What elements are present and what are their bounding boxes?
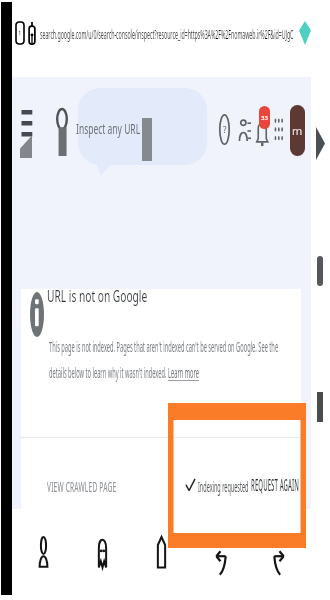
staticText: ? — [223, 124, 227, 135]
button[interactable]: Learn more — [168, 364, 199, 372]
staticText: search.google.com/u/0/search-console/ins… — [40, 25, 294, 42]
staticText: 1 — [18, 29, 22, 37]
button[interactable]: Site settings — [28, 22, 36, 45]
button[interactable]: Menu — [20, 110, 35, 158]
staticText: 33 — [261, 114, 268, 122]
button[interactable]: Account — [14, 523, 73, 581]
button[interactable]: Home — [132, 523, 191, 581]
button[interactable]: Google apps — [274, 117, 284, 143]
button[interactable]: Incognito — [73, 523, 132, 581]
staticText: URL is not on Google — [47, 285, 148, 307]
staticText: This page is not indexed. Pages that are… — [49, 338, 279, 357]
button[interactable]: REQUEST AGAIN — [251, 475, 300, 483]
button[interactable]: Account settings — [239, 118, 251, 144]
button[interactable]: Notifications — [256, 115, 269, 147]
button[interactable]: Help — [219, 114, 230, 145]
button[interactable]: Back — [191, 523, 250, 581]
button[interactable]: Tabs — [16, 22, 24, 44]
staticText: Indexing requested — [198, 476, 249, 494]
button[interactable]: Location marker — [299, 21, 311, 45]
button[interactable]: Profile — [290, 105, 305, 156]
staticText: Inspect any URL — [76, 119, 141, 139]
button[interactable]: Forward — [250, 523, 309, 581]
button[interactable]: VIEW CRAWLED PAGE — [47, 477, 117, 486]
staticText: m — [292, 123, 303, 138]
staticText: details below to learn why it wasn't ind… — [49, 364, 167, 383]
